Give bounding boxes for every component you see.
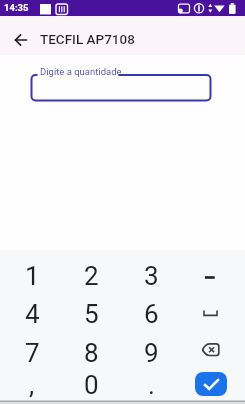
button[interactable]: 7 <box>2 334 62 371</box>
button[interactable] <box>8 27 33 52</box>
staticText: 1 <box>25 261 40 291</box>
button[interactable]: 6 <box>121 295 181 332</box>
button[interactable]: 5 <box>61 295 121 332</box>
staticText: 8 <box>84 338 99 368</box>
staticText: 7 <box>25 338 40 368</box>
staticText: 6 <box>144 299 159 329</box>
staticText: 3 <box>144 261 159 291</box>
button[interactable]: 0 <box>61 366 121 403</box>
staticText: 0 <box>84 370 99 400</box>
button[interactable] <box>195 372 227 396</box>
button[interactable] <box>180 257 240 294</box>
staticText: 9 <box>144 338 159 368</box>
button[interactable] <box>180 295 240 332</box>
button[interactable]: 8 <box>61 334 121 371</box>
button[interactable]: 1 <box>2 257 62 294</box>
staticText: Digite a quantidade <box>40 66 122 77</box>
button[interactable]: 4 <box>2 295 62 332</box>
staticText: 4 <box>25 299 40 329</box>
button[interactable] <box>180 334 240 371</box>
button[interactable]: 3 <box>121 257 181 294</box>
button[interactable] <box>32 75 211 101</box>
button[interactable]: . <box>121 366 181 403</box>
staticText: TECFIL AP7108 <box>40 31 135 47</box>
staticText: . <box>148 370 155 400</box>
button[interactable]: 9 <box>121 334 181 371</box>
button[interactable]: 2 <box>61 257 121 294</box>
button[interactable]: , <box>2 366 62 403</box>
staticText: 14:35 <box>4 2 29 13</box>
staticText: 5 <box>84 299 99 329</box>
staticText: 2 <box>84 261 99 291</box>
staticText: , <box>29 370 35 400</box>
